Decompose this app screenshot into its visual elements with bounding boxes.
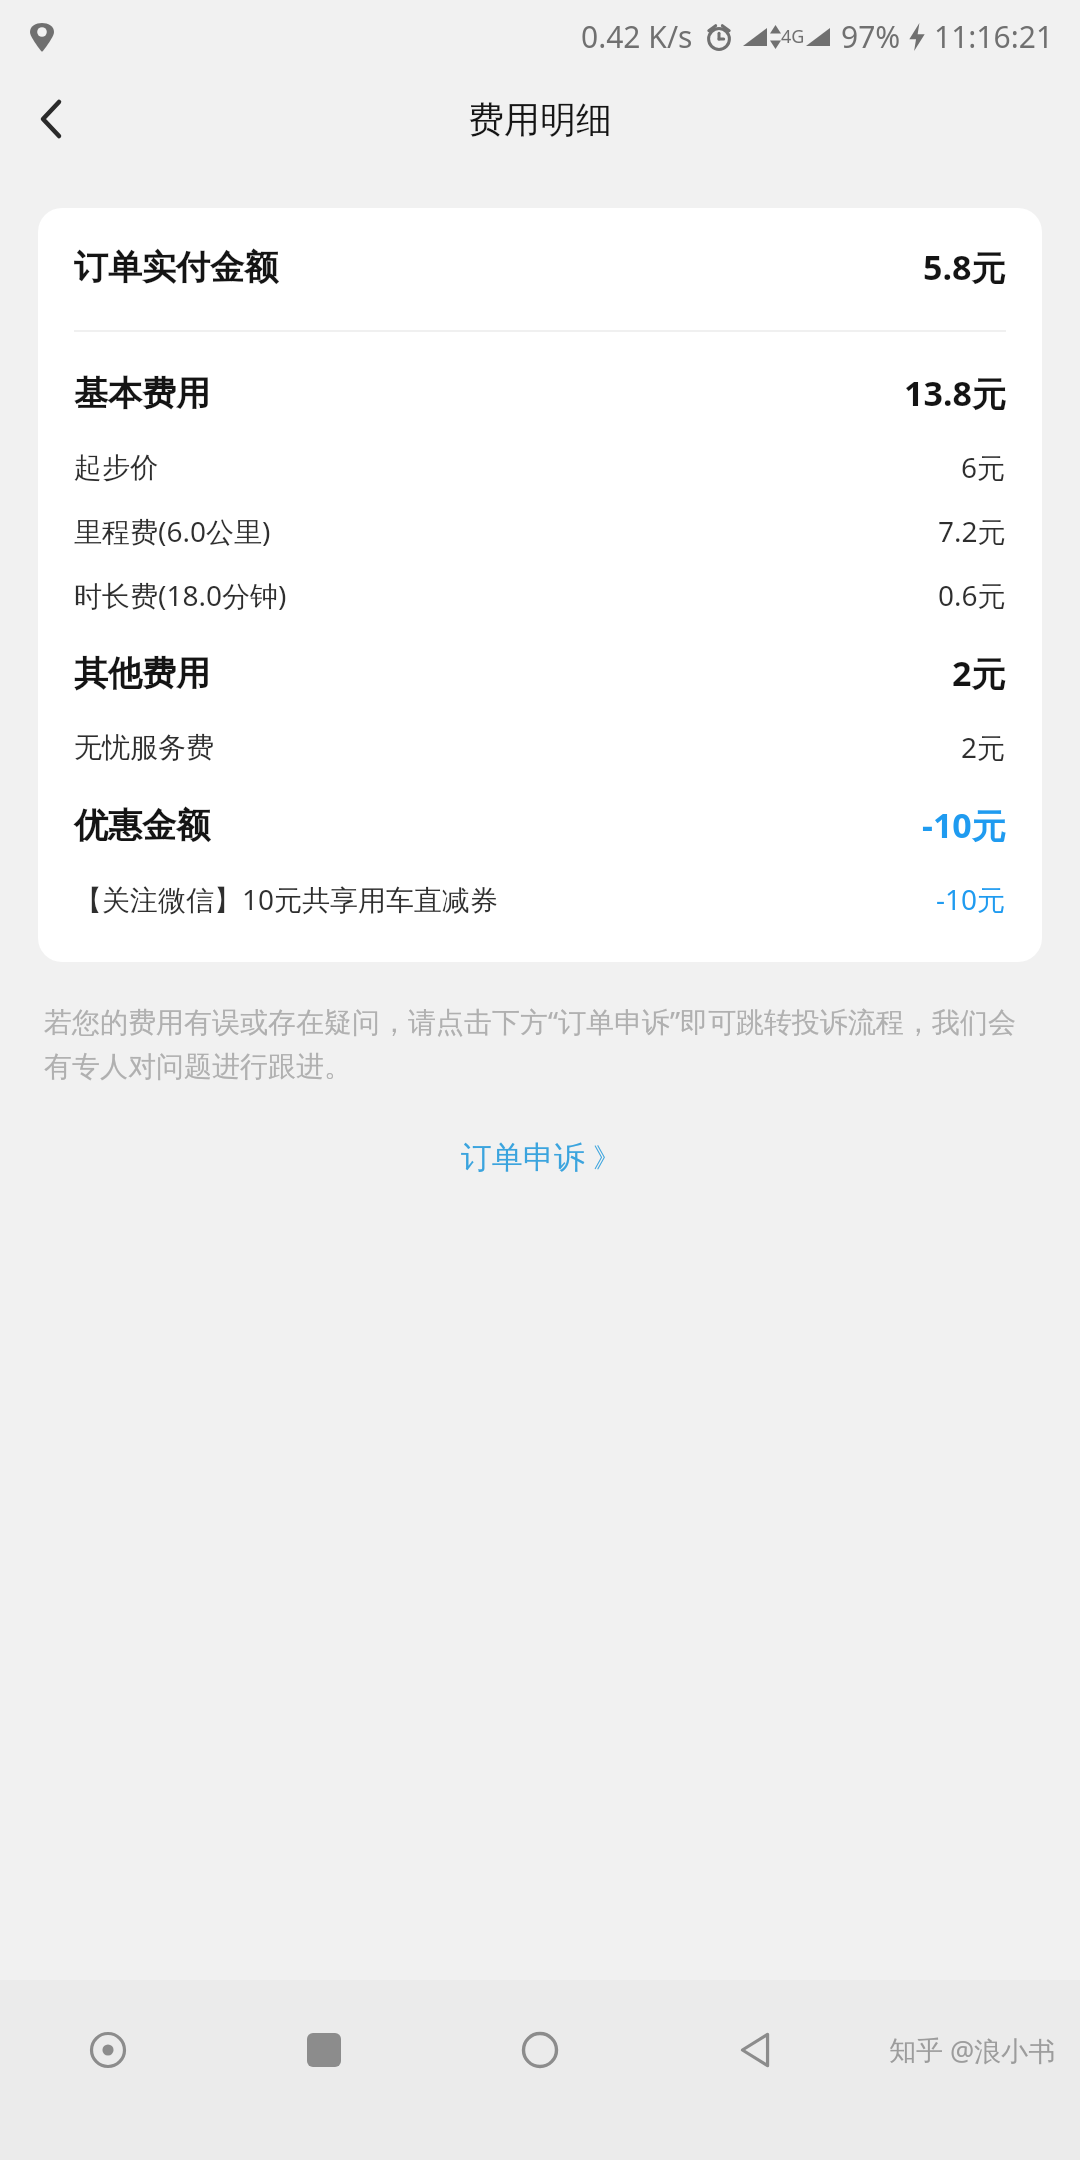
button[interactable]: 订单申诉 (431, 1128, 650, 1187)
staticText: 其他费用 (74, 652, 210, 695)
staticText: 5.8元 (923, 244, 1006, 290)
staticText: 优惠金额 (74, 804, 210, 847)
staticText: 【关注微信】10元共享用车直减券 (74, 880, 499, 918)
button[interactable]: Back (648, 1980, 864, 2120)
staticText: 11:16:21 (934, 16, 1054, 57)
button[interactable]: Assistant (0, 1980, 216, 2120)
button[interactable]: 起步价 (74, 448, 1006, 486)
button[interactable]: 基本费用 (74, 370, 1006, 416)
staticText: -10元 (936, 880, 1006, 918)
staticText: @浪小书 (950, 2032, 1056, 2069)
staticText: 7.2元 (938, 512, 1006, 550)
staticText: 基本费用 (74, 372, 210, 415)
staticText: 订单申诉 (461, 1138, 585, 1177)
staticText: 4G (781, 24, 805, 49)
staticText: 时长费(18.0分钟) (74, 576, 287, 614)
staticText: 订单实付金额 (74, 246, 278, 289)
button[interactable]: Recents (216, 1980, 432, 2120)
staticText: 0.42 K/s (581, 16, 693, 57)
staticText: 费用明细 (468, 97, 612, 142)
staticText: -10元 (922, 802, 1006, 848)
button[interactable]: 订单实付金额 (74, 244, 1006, 290)
staticText: 6元 (961, 448, 1006, 486)
staticText: 2元 (961, 728, 1006, 766)
staticText: 起步价 (74, 450, 158, 485)
staticText: 无忧服务费 (74, 730, 214, 765)
button[interactable]: Home (432, 1980, 648, 2120)
button[interactable]: Back (0, 72, 100, 166)
button[interactable]: 时长费(18.0分钟) (74, 576, 1006, 614)
button[interactable]: 优惠金额 (74, 802, 1006, 848)
staticText: 0.6元 (938, 576, 1006, 614)
staticText: 》 (593, 1141, 620, 1175)
button[interactable]: 其他费用 (74, 650, 1006, 696)
staticText: 知乎 (889, 2034, 943, 2068)
staticText: 13.8元 (904, 370, 1006, 416)
button[interactable]: 【关注微信】10元共享用车直减券 (74, 880, 1006, 918)
button[interactable]: 里程费(6.0公里) (74, 512, 1006, 550)
button[interactable]: 无忧服务费 (74, 728, 1006, 766)
staticText: 2元 (952, 650, 1006, 696)
staticText: 若您的费用有误或存在疑问，请点击下方“订单申诉”即可跳转投诉流程，我们会有专人对… (44, 1002, 1036, 1084)
staticText: 97% (841, 16, 901, 57)
staticText: 里程费(6.0公里) (74, 512, 271, 550)
